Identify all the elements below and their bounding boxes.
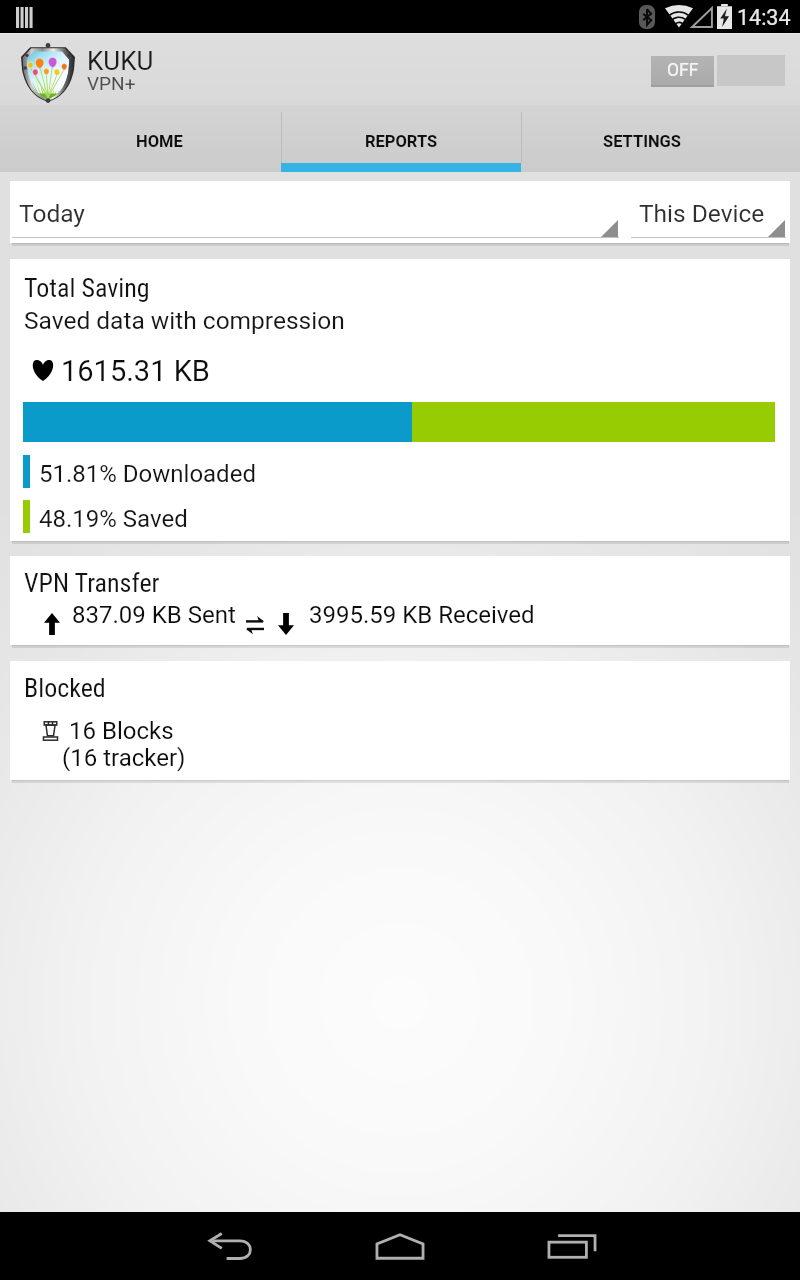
staticText: 837.09 KB Sent: [72, 601, 236, 629]
staticText: VPN+: [87, 72, 136, 94]
staticText: REPORTS: [365, 132, 438, 151]
staticText: 16 Blocks: [69, 717, 174, 745]
button[interactable]: VPN toggle, off: [651, 53, 785, 87]
staticText: (16 tracker): [62, 744, 186, 772]
staticText: 1615.31 KB: [61, 354, 210, 388]
staticText: Total Saving: [24, 273, 150, 303]
button[interactable]: HOME: [0, 105, 281, 163]
staticText: VPN Transfer: [24, 568, 160, 598]
button[interactable]: REPORTS: [281, 105, 521, 163]
staticText: 3995.59 KB Received: [309, 601, 535, 629]
button[interactable]: Recent apps: [487, 1212, 657, 1280]
staticText: Saved data with compression: [24, 306, 345, 335]
staticText: OFF: [667, 60, 699, 81]
button[interactable]: SETTINGS: [521, 105, 800, 163]
button[interactable]: Back: [146, 1212, 316, 1280]
staticText: SETTINGS: [603, 132, 681, 151]
staticText: This Device: [639, 199, 765, 228]
staticText: Blocked: [24, 673, 106, 703]
staticText: 48.19% Saved: [39, 505, 188, 533]
staticText: 51.81% Downloaded: [39, 460, 256, 488]
button[interactable]: This Device: [631, 181, 786, 243]
button[interactable]: Home: [315, 1212, 485, 1280]
staticText: HOME: [136, 132, 183, 151]
staticText: KUKU: [87, 46, 154, 76]
staticText: Today: [19, 199, 85, 228]
button[interactable]: Today: [12, 181, 619, 243]
staticText: 14:34: [737, 5, 791, 30]
